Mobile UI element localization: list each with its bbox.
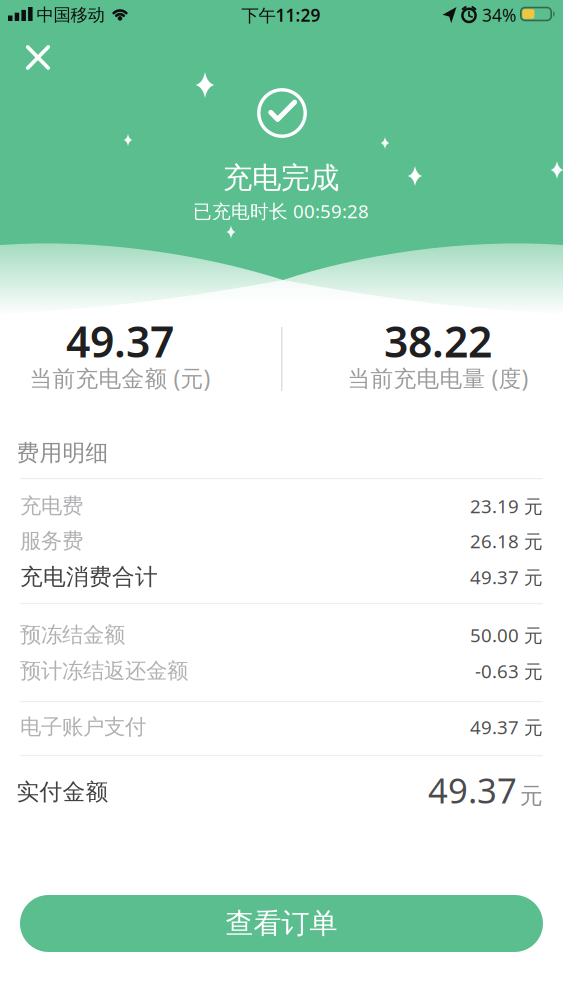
button[interactable]: Close — [20, 39, 57, 76]
staticText: 23.19 元 — [470, 494, 543, 518]
staticText: -0.63 元 — [475, 659, 543, 683]
staticText: 34% — [482, 3, 516, 26]
staticText: 电子账户支付 — [20, 714, 146, 740]
staticText: 下午11:29 — [241, 3, 320, 26]
staticText: 查看订单 — [225, 906, 337, 941]
staticText: 充电消费合计 — [20, 563, 158, 591]
staticText: 49.37 元 — [470, 715, 543, 739]
staticText: 服务费 — [20, 528, 83, 554]
staticText: 当前充电金额 (元) — [29, 363, 210, 393]
staticText: 实付金额 — [16, 778, 108, 806]
staticText: 充电完成 — [223, 160, 339, 196]
staticText: 预计冻结返还金额 — [20, 658, 188, 684]
staticText: 中国移动 — [36, 4, 104, 26]
staticText: 50.00 元 — [470, 623, 543, 647]
staticText: 充电费 — [20, 493, 83, 519]
button[interactable]: 查看订单 — [20, 895, 543, 952]
staticText: 49.37 元 — [470, 565, 543, 589]
staticText: 49.37 — [66, 313, 174, 369]
staticText: 49.37 — [428, 767, 517, 813]
staticText: 预冻结金额 — [20, 622, 125, 648]
staticText: 38.22 — [384, 313, 492, 369]
staticText: 已充电时长 00:59:28 — [193, 199, 369, 223]
staticText: 26.18 元 — [470, 529, 543, 553]
staticText: 费用明细 — [16, 439, 108, 467]
staticText: 元 — [520, 782, 543, 810]
staticText: 当前充电电量 (度) — [347, 363, 528, 393]
